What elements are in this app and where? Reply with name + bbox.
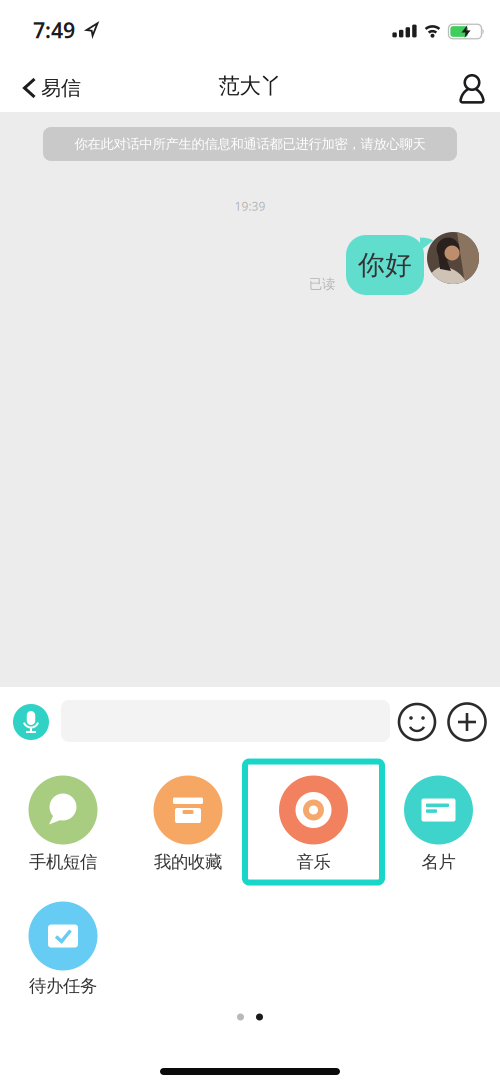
staticText: 已读 <box>309 276 335 292</box>
staticText: 19:39 <box>234 198 265 214</box>
button[interactable]: 易信 <box>23 76 81 100</box>
staticText: 易信 <box>41 76 81 100</box>
staticText: 范大丫 <box>218 73 281 99</box>
button[interactable]: 联系人资料 <box>458 74 486 104</box>
button[interactable]: 更多 <box>448 703 485 740</box>
staticText: 手机短信 <box>29 851 97 873</box>
staticText: 音乐 <box>296 851 330 873</box>
button[interactable]: 表情 <box>399 704 435 740</box>
button[interactable]: 待办任务 <box>3 901 123 997</box>
button[interactable]: 我的收藏 <box>128 775 248 873</box>
button[interactable]: 头像 <box>427 232 479 284</box>
staticText: 你好 <box>358 249 412 281</box>
button[interactable]: 名片 <box>378 775 498 873</box>
staticText: 我的收藏 <box>154 851 222 873</box>
staticText: 名片 <box>421 851 455 873</box>
button[interactable]: 手机短信 <box>3 775 123 873</box>
button[interactable]: 语音输入 <box>13 704 49 740</box>
staticText: 你在此对话中所产生的信息和通话都已进行加密，请放心聊天 <box>74 136 425 152</box>
staticText: 7:49 <box>33 16 75 44</box>
button[interactable]: 音乐 <box>253 775 373 873</box>
staticText: 待办任务 <box>29 975 97 997</box>
